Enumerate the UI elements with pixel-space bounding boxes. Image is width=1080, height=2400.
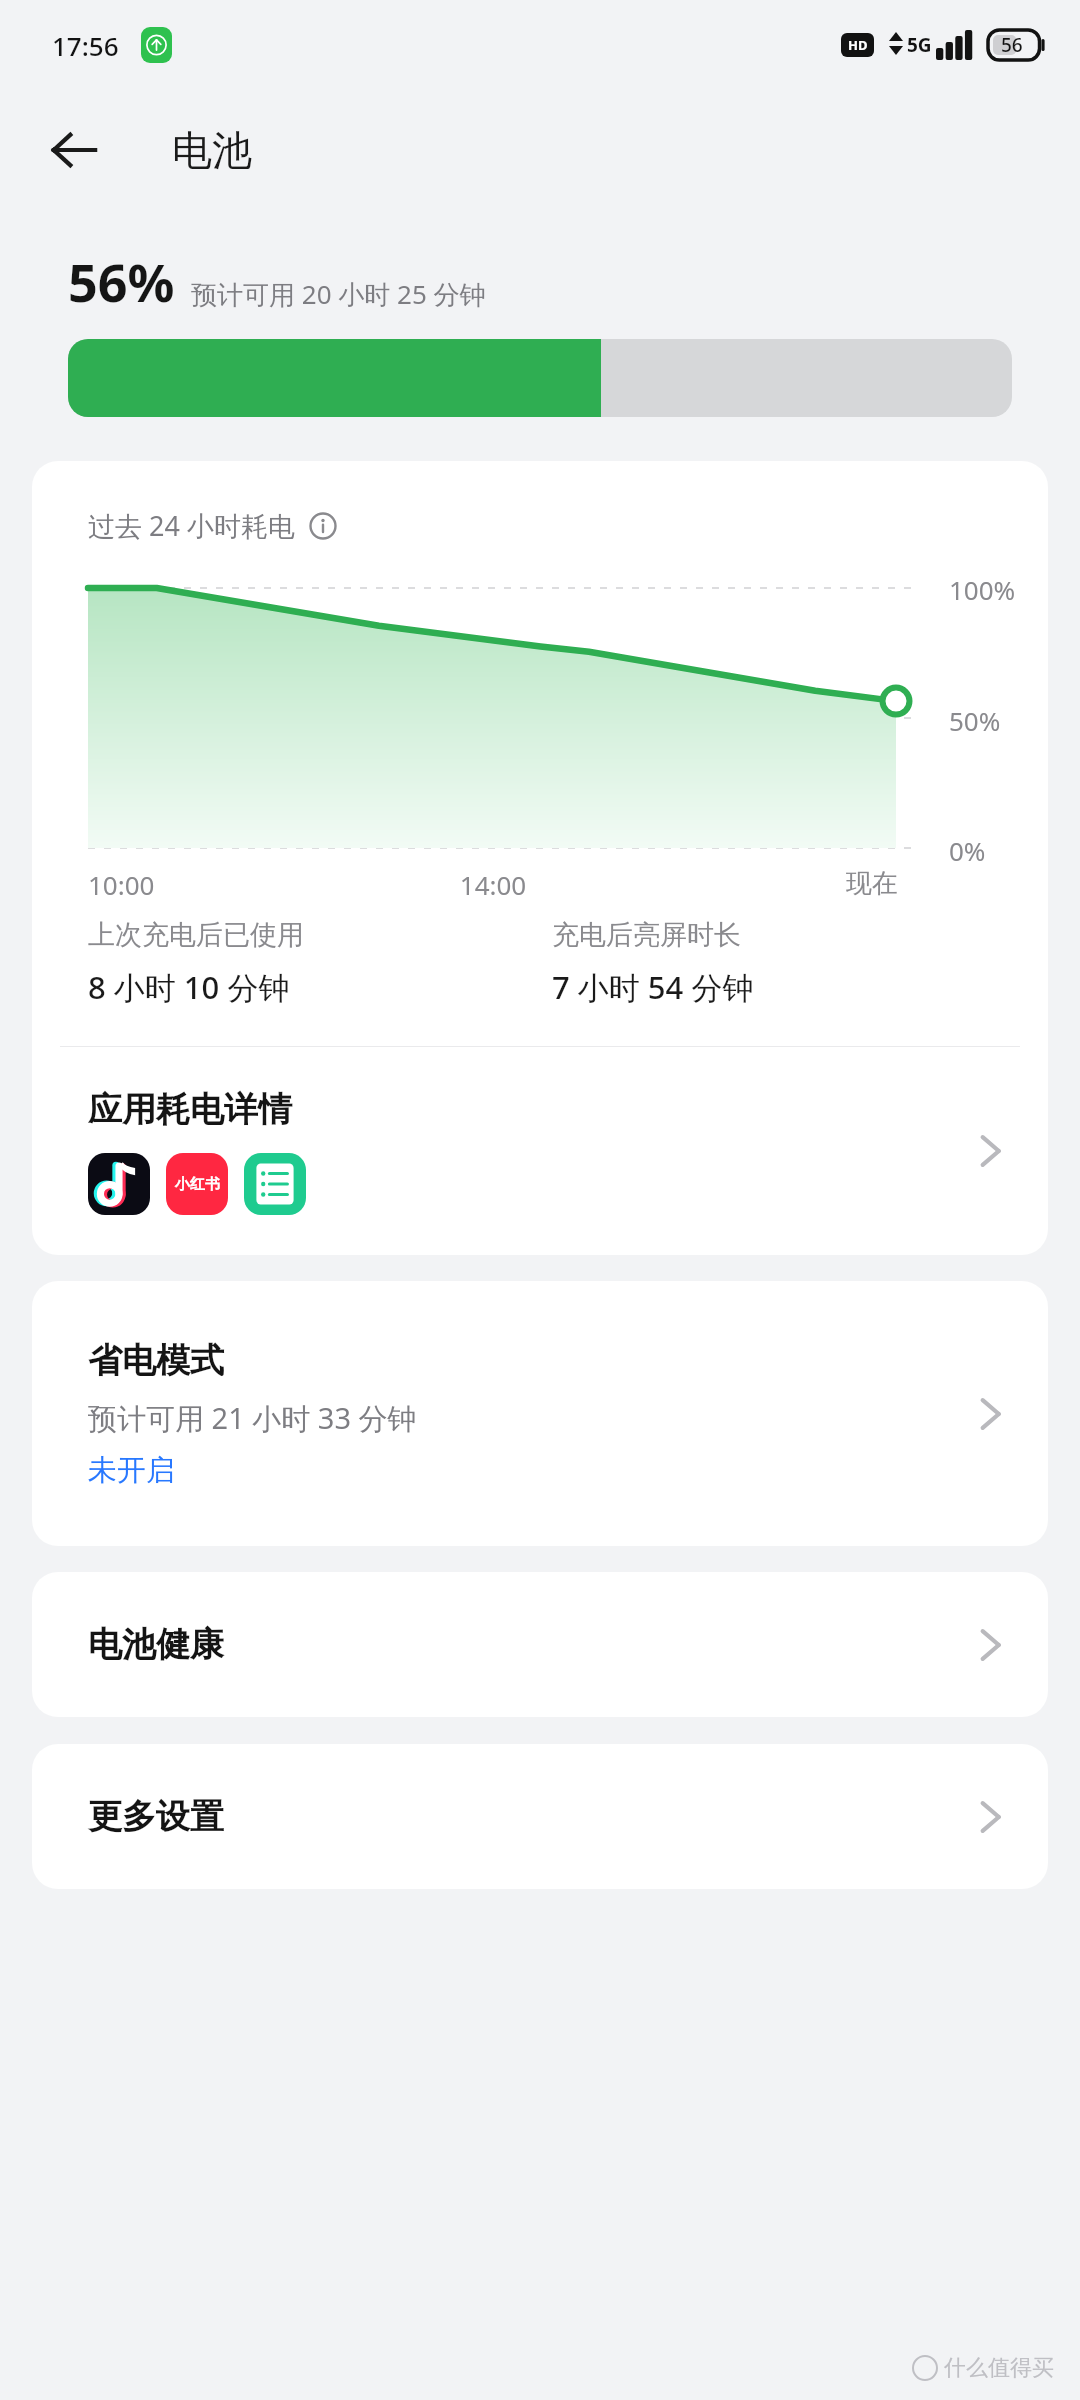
staticText: 什么值得买 — [944, 2354, 1054, 2382]
staticText: 56% — [68, 246, 175, 317]
staticText: 5G — [907, 32, 932, 58]
button[interactable]: 省电模式 — [32, 1281, 1048, 1546]
staticText: 未开启 — [88, 1452, 175, 1489]
staticText: HD — [848, 36, 868, 54]
staticText: 0% — [949, 833, 986, 868]
staticText: 小红书 — [175, 1175, 220, 1194]
staticText: 电池健康 — [88, 1623, 224, 1666]
staticText: 预计可用 21 小时 33 分钟 — [88, 1398, 417, 1438]
button[interactable]: 返回 — [36, 112, 112, 188]
staticText: 7 小时 54 分钟 — [552, 966, 754, 1008]
staticText: 上次充电后已使用 — [88, 918, 304, 952]
staticText: 充电后亮屏时长 — [552, 918, 741, 952]
staticText: 预计可用 20 小时 25 分钟 — [191, 276, 486, 312]
staticText: 8 小时 10 分钟 — [88, 966, 290, 1008]
staticText: 电池 — [172, 125, 252, 175]
staticText: 更多设置 — [88, 1795, 224, 1838]
staticText: 56 — [1001, 32, 1023, 58]
staticText: 50% — [949, 703, 1001, 738]
staticText: 100% — [949, 572, 1016, 607]
staticText: 17:56 — [52, 28, 119, 63]
button[interactable]: 电池健康 — [32, 1572, 1048, 1717]
staticText: 过去 24 小时耗电 — [88, 507, 295, 544]
staticText: 应用耗电详情 — [88, 1088, 292, 1131]
staticText: 现在 — [628, 867, 898, 900]
button[interactable]: 更多设置 — [32, 1744, 1048, 1889]
staticText: 省电模式 — [88, 1339, 224, 1382]
button[interactable]: 应用耗电详情 — [32, 1047, 1048, 1255]
staticText: 14:00 — [358, 867, 628, 902]
staticText: 10:00 — [88, 867, 358, 902]
